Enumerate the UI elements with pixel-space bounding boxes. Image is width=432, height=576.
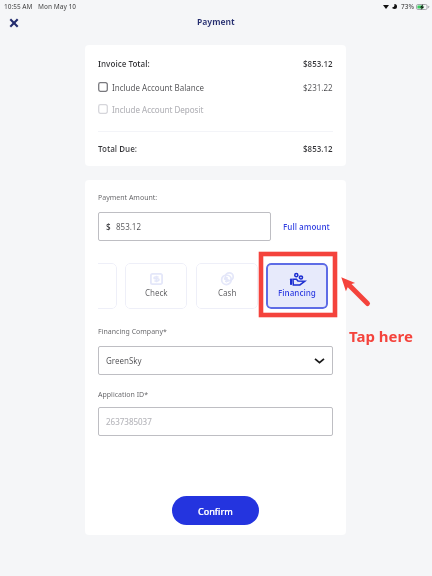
- staticText: Invoice Total:: [98, 58, 150, 69]
- staticText: Confirm: [198, 505, 233, 517]
- staticText: $: [106, 221, 111, 232]
- staticText: Full amount: [283, 221, 330, 232]
- staticText: Total Due:: [98, 143, 138, 154]
- staticText: GreenSky: [106, 355, 142, 366]
- staticText: 10:55 AM: [4, 2, 33, 11]
- button[interactable]: $: [98, 212, 271, 241]
- button[interactable]: Check: [125, 263, 187, 309]
- button[interactable]: Confirm: [172, 496, 259, 525]
- staticText: $231.22: [303, 82, 333, 93]
- staticText: 73%: [401, 2, 414, 11]
- staticText: Include Account Balance: [112, 82, 205, 93]
- staticText: Application ID*: [98, 390, 149, 400]
- staticText: Mon May 10: [38, 2, 76, 11]
- button[interactable]: Cash: [196, 263, 258, 309]
- button[interactable]: Full amount: [283, 221, 330, 232]
- staticText: Financing: [278, 287, 316, 298]
- staticText: Cash: [218, 287, 237, 298]
- staticText: Payment: [197, 16, 235, 28]
- staticText: Check: [145, 287, 168, 298]
- button[interactable]: Close: [5, 14, 23, 32]
- staticText: $853.12: [303, 143, 333, 154]
- button[interactable]: Credit card: [98, 263, 117, 309]
- staticText: Payment Amount:: [98, 193, 158, 203]
- staticText: 2637385037: [106, 416, 152, 427]
- staticText: 853.12: [116, 221, 142, 232]
- button[interactable]: GreenSky: [98, 346, 333, 375]
- button[interactable]: 2637385037: [98, 407, 333, 436]
- button[interactable]: Financing: [266, 263, 328, 309]
- staticText: Tap here: [349, 326, 413, 346]
- staticText: $853.12: [303, 58, 333, 69]
- staticText: Include Account Deposit: [112, 104, 204, 115]
- staticText: Financing Company*: [98, 327, 167, 337]
- button[interactable]: Include Account Balance: [98, 81, 333, 93]
